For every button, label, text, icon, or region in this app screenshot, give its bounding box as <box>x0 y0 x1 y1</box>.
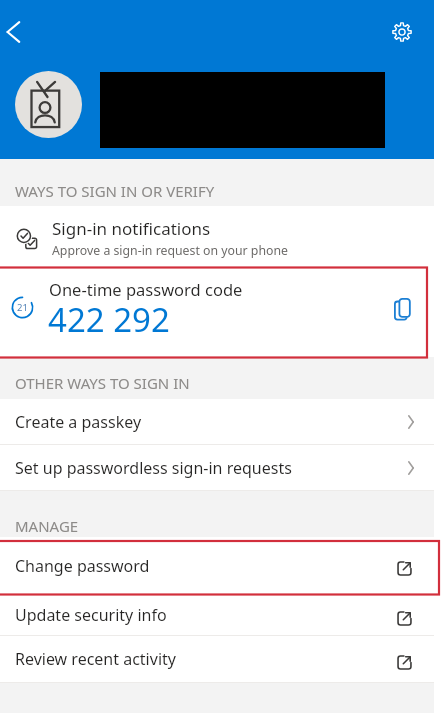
staticText: WAYS TO SIGN IN OR VERIFY <box>15 181 215 201</box>
staticText: Change password <box>15 555 150 577</box>
button[interactable]: 21 <box>0 267 442 357</box>
staticText: Review recent activity <box>15 648 176 670</box>
staticText: Approve a sign-in request on your phone <box>52 242 288 259</box>
button[interactable]: Review recent activity <box>0 636 442 683</box>
other: Open in browser <box>397 655 412 670</box>
button[interactable]: Settings <box>380 10 424 54</box>
staticText: OTHER WAYS TO SIGN IN <box>15 373 190 393</box>
staticText: 21 <box>17 301 28 314</box>
other: Copy code <box>394 298 412 320</box>
staticText: Create a passkey <box>15 411 142 433</box>
button[interactable]: Update security info <box>0 595 442 636</box>
staticText: Set up passwordless sign-in requests <box>15 457 292 479</box>
staticText: MANAGE <box>15 516 79 536</box>
button[interactable]: Sign-in notifications <box>0 206 442 267</box>
other: Open in browser <box>397 561 412 576</box>
staticText: Sign-in notifications <box>52 217 211 240</box>
staticText: 422 292 <box>48 297 170 342</box>
staticText: One-time password code <box>49 278 243 300</box>
button[interactable]: Change password <box>0 537 442 595</box>
other: Open in browser <box>397 611 412 626</box>
button[interactable]: Set up passwordless sign-in requests <box>0 445 442 491</box>
button[interactable]: Create a passkey <box>0 399 442 445</box>
button[interactable]: Back <box>0 10 36 54</box>
staticText: Update security info <box>15 604 167 626</box>
